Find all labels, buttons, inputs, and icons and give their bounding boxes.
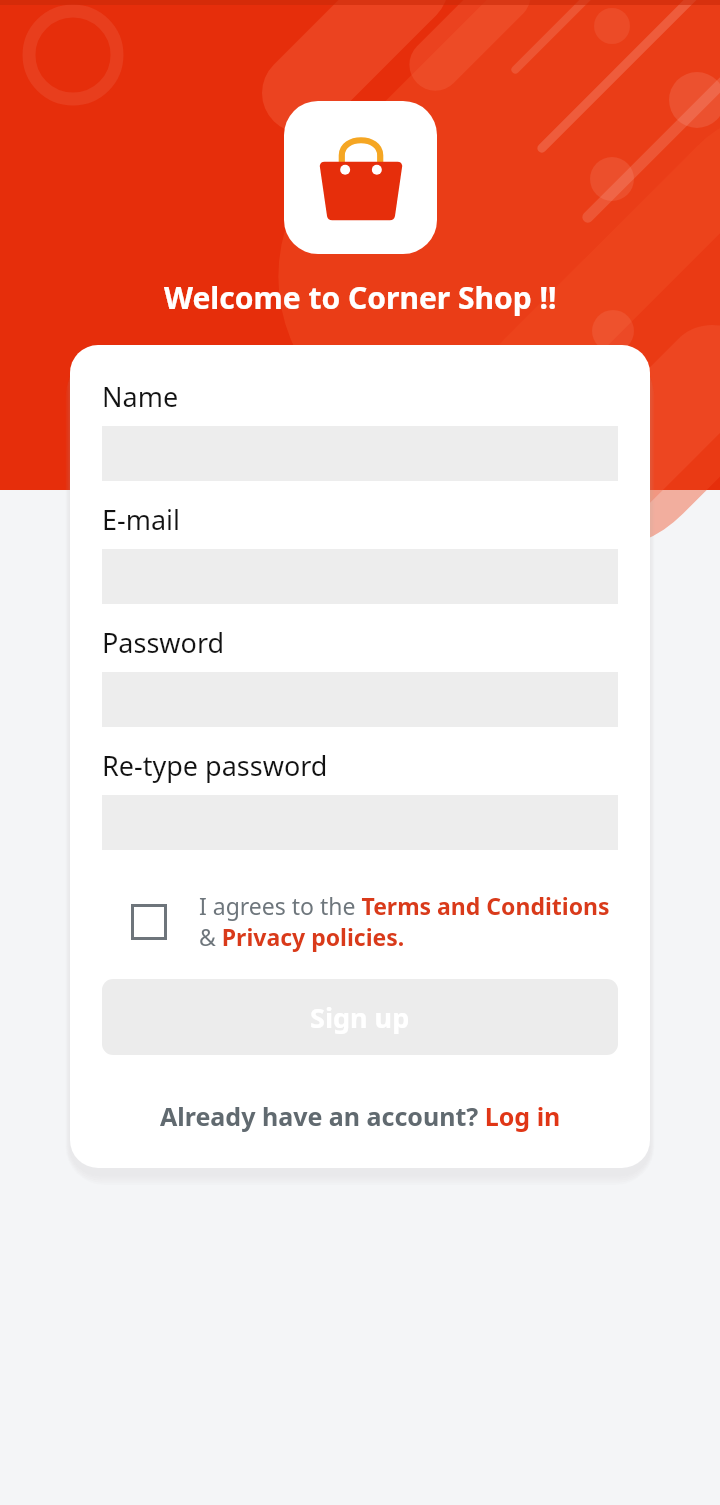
button[interactable]: Agree to terms checkbox [102,890,618,953]
staticText: Password [102,624,225,661]
staticText: Already have an account? Log in [160,1099,561,1133]
staticText: Welcome to Corner Shop !! [164,277,557,318]
button[interactable]: Already have an account? Log in [102,1099,618,1133]
other: Agree to terms checkbox [131,904,167,940]
staticText: I agrees to the Terms and Conditions & P… [199,890,618,953]
staticText: Sign up [310,999,410,1036]
staticText: Name [102,378,179,415]
staticText: Re-type password [102,747,328,784]
staticText: E-mail [102,501,181,538]
